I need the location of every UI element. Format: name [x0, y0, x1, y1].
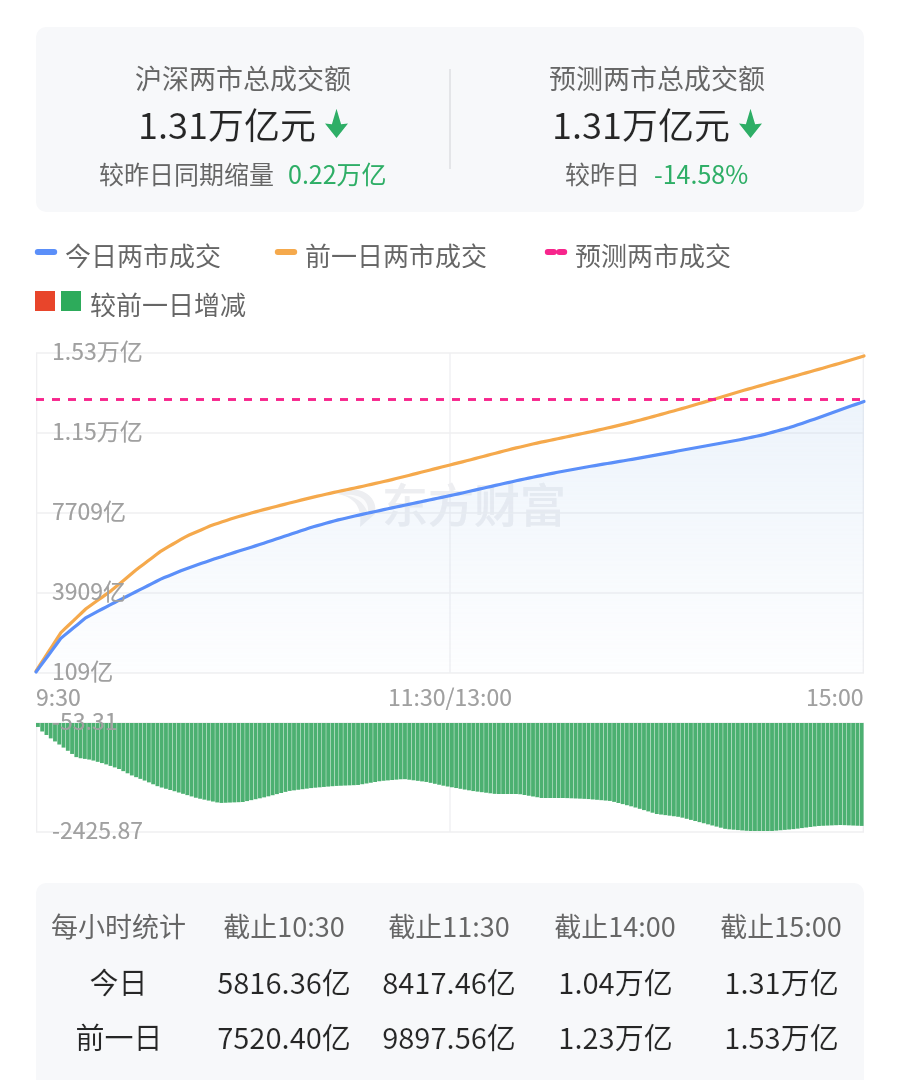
staticText: 1.53万亿 [724, 1015, 839, 1057]
staticText: 1.31万亿元 [552, 97, 730, 147]
staticText: 1.23万亿 [558, 1015, 673, 1057]
staticText: 今日 [89, 960, 148, 1002]
button[interactable]: 沪深两市总成交额 [36, 27, 864, 212]
staticText: 0.22万亿 [288, 155, 387, 191]
staticText: 东方财富 [382, 469, 566, 536]
staticText: 9:30 [36, 679, 81, 711]
staticText: 1.53万亿 [52, 333, 143, 366]
button[interactable]: 每小时统计 [36, 883, 864, 1080]
staticText: 每小时统计 [51, 906, 186, 945]
staticText: -2425.87 [52, 812, 143, 845]
button[interactable]: 今日两市成交 [36, 236, 222, 268]
staticText: 预测两市总成交额 [549, 58, 765, 97]
staticText: 3909亿 [52, 573, 127, 606]
button[interactable]: 前一日两市成交 [276, 236, 488, 268]
staticText: 1.31万亿 [724, 960, 839, 1002]
staticText: 较前一日增减 [90, 285, 247, 317]
staticText: 9897.56亿 [382, 1015, 516, 1057]
button[interactable]: 预测两市成交 [546, 236, 732, 268]
other: 下跌 [739, 107, 762, 138]
staticText: 前一日两市成交 [305, 236, 488, 268]
staticText: 截止10:30 [223, 906, 345, 945]
staticText: 较昨日 [565, 155, 641, 191]
staticText: 109亿 [52, 653, 114, 686]
staticText: 截止11:30 [388, 906, 510, 945]
staticText: 1.15万亿 [52, 413, 143, 446]
staticText: 今日两市成交 [65, 236, 222, 268]
other: 下跌 [325, 107, 348, 138]
staticText: 前一日 [75, 1015, 163, 1057]
staticText: -14.58% [654, 155, 749, 191]
staticText: 8417.46亿 [382, 960, 516, 1002]
staticText: 较昨日同期缩量 [99, 155, 275, 191]
staticText: 7709亿 [52, 493, 127, 526]
staticText: 1.04万亿 [558, 960, 673, 1002]
staticText: 1.31万亿元 [138, 97, 316, 147]
staticText: 截止15:00 [720, 906, 842, 945]
staticText: 截止14:00 [554, 906, 676, 945]
staticText: 预测两市成交 [575, 236, 732, 268]
staticText: 7520.40亿 [217, 1015, 351, 1057]
staticText: 5816.36亿 [217, 960, 351, 1002]
staticText: 11:30/13:00 [388, 679, 512, 711]
staticText: -53.31 [52, 703, 118, 736]
staticText: 15:00 [806, 679, 864, 711]
staticText: 沪深两市总成交额 [135, 58, 351, 97]
